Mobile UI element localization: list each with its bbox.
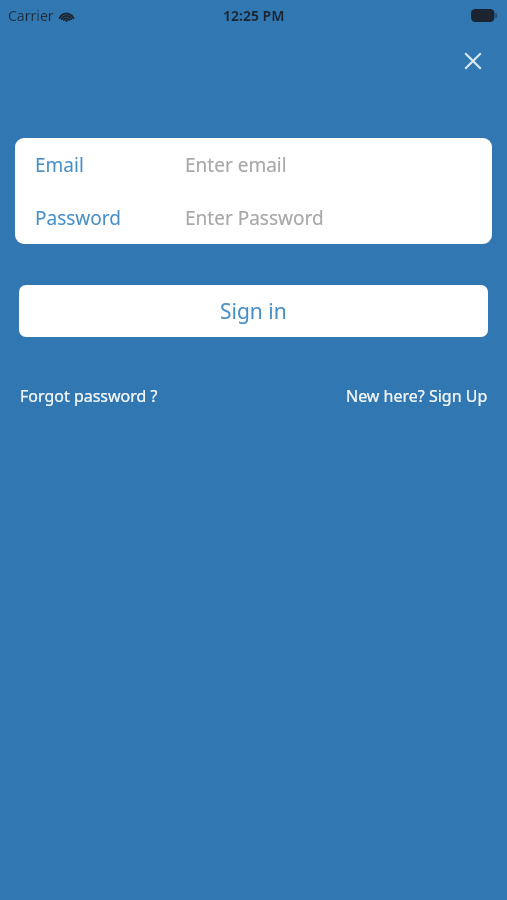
- staticText: Enter email: [185, 152, 287, 178]
- button[interactable]: New here? Sign Up: [346, 381, 488, 411]
- staticText: Sign in: [220, 297, 287, 326]
- staticText: Carrier: [8, 6, 54, 25]
- staticText: New here? Sign Up: [346, 385, 488, 407]
- staticText: 12:25 PM: [223, 6, 285, 25]
- staticText: Enter Password: [185, 205, 324, 231]
- staticText: Forgot password ?: [20, 385, 158, 407]
- button[interactable]: Close: [452, 40, 494, 82]
- staticText: Email: [35, 152, 84, 178]
- button[interactable]: Forgot password ?: [20, 381, 158, 411]
- staticText: Password: [35, 205, 121, 231]
- button[interactable]: Password: [15, 191, 492, 244]
- button[interactable]: Email: [15, 138, 492, 191]
- button[interactable]: Sign in: [19, 285, 488, 337]
